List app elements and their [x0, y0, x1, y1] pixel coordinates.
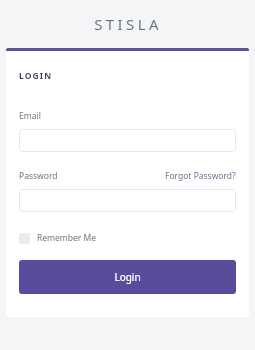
button[interactable]: Text input — [19, 189, 236, 212]
staticText: Email — [19, 110, 41, 122]
button[interactable]: Text input — [19, 129, 236, 152]
button[interactable]: Forgot Password? — [165, 170, 236, 182]
staticText: Password — [19, 170, 58, 182]
staticText: Forgot Password? — [165, 170, 236, 182]
staticText: Login — [114, 270, 141, 284]
button[interactable]: Remember Me — [19, 230, 97, 246]
button[interactable]: Login — [19, 260, 236, 294]
staticText: LOGIN — [19, 70, 53, 82]
staticText: STISLA — [94, 14, 162, 34]
staticText: Remember Me — [37, 232, 97, 244]
